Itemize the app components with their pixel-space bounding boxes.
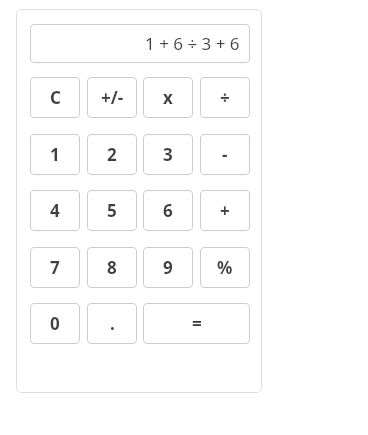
staticText: 8 [107,256,117,279]
button[interactable]: 8 [87,247,137,288]
button[interactable]: = [143,303,250,344]
button[interactable]: ÷ [200,77,250,118]
button[interactable]: 1 [30,134,80,175]
staticText: 4 [50,199,60,222]
button[interactable]: 0 [30,303,80,344]
staticText: ÷ [220,86,230,109]
staticText: x [163,86,173,109]
staticText: 7 [50,256,60,279]
button[interactable]: +/- [87,77,137,118]
button[interactable]: 3 [143,134,193,175]
staticText: 6 [163,199,173,222]
button[interactable]: C [30,77,80,118]
button[interactable]: + [200,190,250,231]
button[interactable]: 1 + 6 ÷ 3 + 6 [30,24,250,63]
staticText: C [50,86,61,109]
button[interactable]: % [200,247,250,288]
staticText: % [217,256,233,279]
staticText: +/- [101,86,124,109]
staticText: 2 [107,143,117,166]
staticText: 1 + 6 ÷ 3 + 6 [145,32,240,55]
staticText: - [222,143,228,166]
button[interactable]: 7 [30,247,80,288]
staticText: 0 [50,312,60,335]
button[interactable]: 9 [143,247,193,288]
staticText: 5 [107,199,117,222]
button[interactable]: 4 [30,190,80,231]
button[interactable]: 5 [87,190,137,231]
staticText: + [220,199,230,222]
staticText: 3 [163,143,173,166]
staticText: 9 [163,256,173,279]
staticText: 1 [50,143,60,166]
button[interactable]: 2 [87,134,137,175]
button[interactable]: . [87,303,137,344]
staticText: = [192,312,202,335]
staticText: . [110,312,115,335]
button[interactable]: - [200,134,250,175]
button[interactable]: x [143,77,193,118]
button[interactable]: 6 [143,190,193,231]
